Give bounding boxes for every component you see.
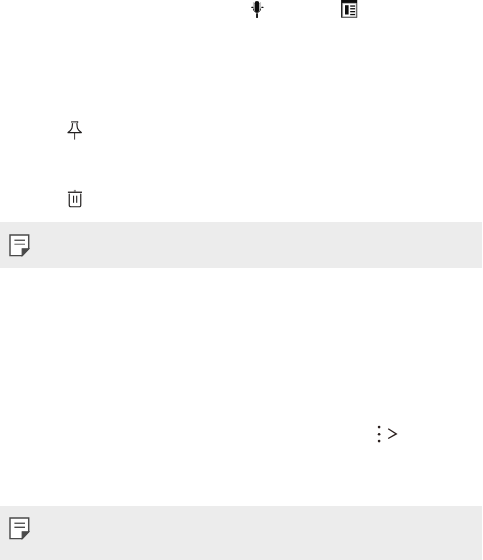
button[interactable]: Open [384, 422, 400, 446]
button[interactable]: Article [337, 0, 361, 24]
button[interactable]: More options [371, 422, 388, 446]
button[interactable]: Pin [63, 117, 87, 141]
button[interactable] [0, 222, 482, 268]
button[interactable]: Voice input [245, 0, 269, 24]
button[interactable] [0, 506, 482, 560]
button[interactable]: Delete [63, 186, 87, 210]
